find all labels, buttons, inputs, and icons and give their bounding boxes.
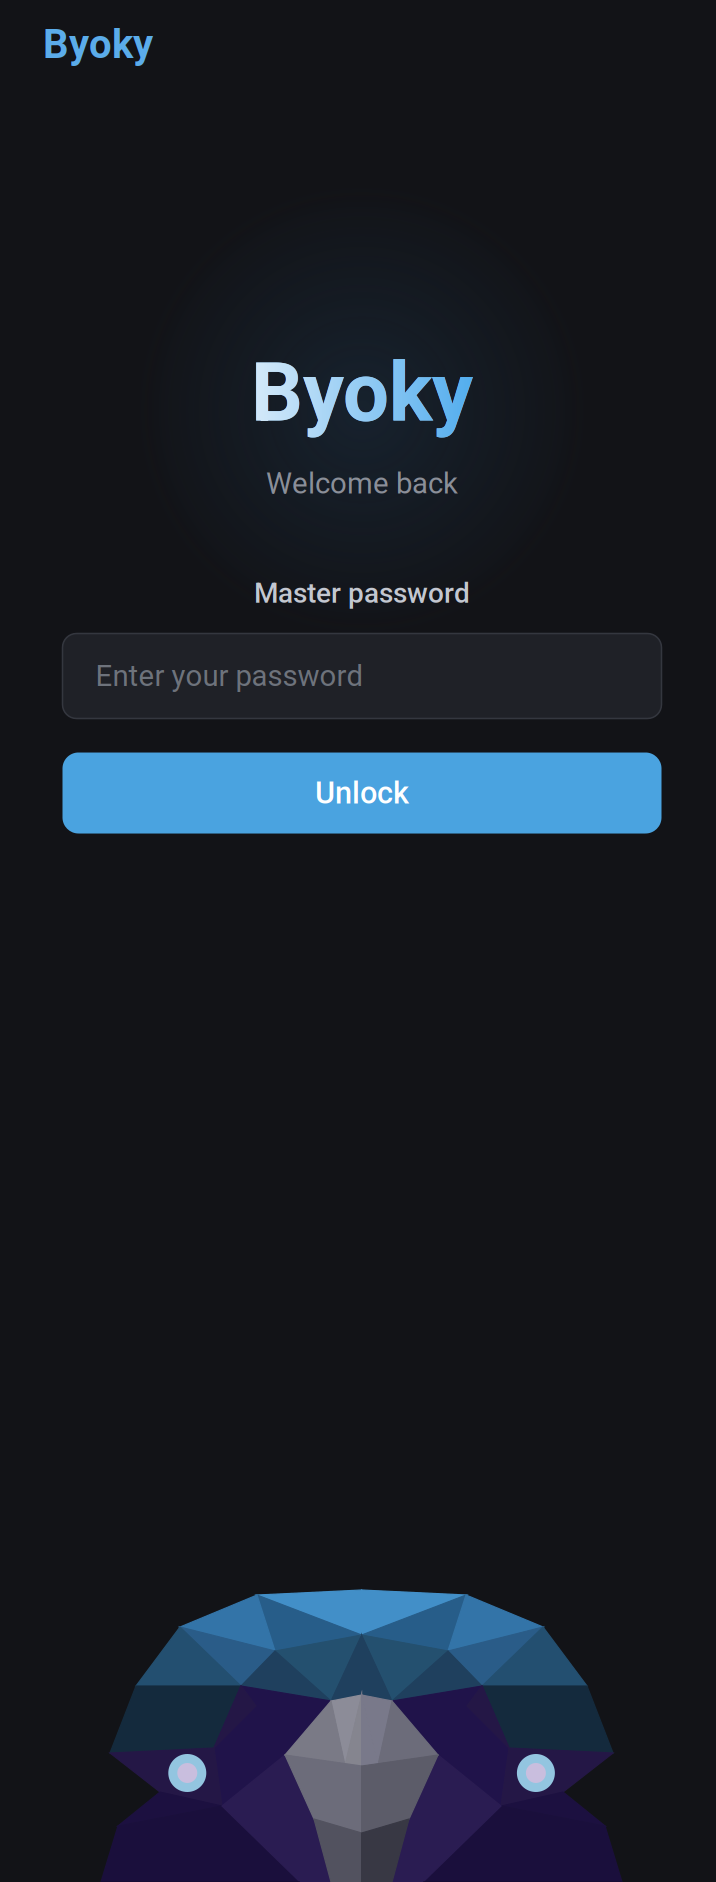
staticText: Unlock — [315, 775, 409, 811]
button[interactable]: Unlock — [62, 752, 661, 833]
staticText: Byoky — [251, 345, 473, 440]
staticText: Welcome back — [266, 466, 458, 501]
staticText: Byoky — [43, 21, 153, 68]
staticText: Master password — [254, 577, 470, 609]
staticText: Enter your password — [95, 659, 363, 693]
